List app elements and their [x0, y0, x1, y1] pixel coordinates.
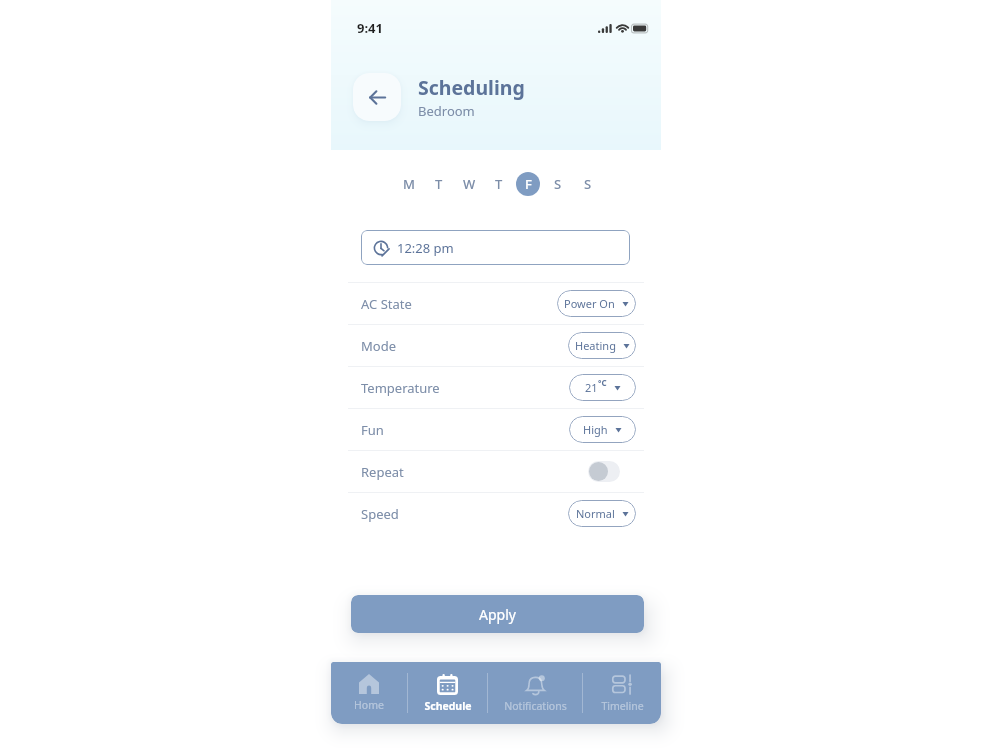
staticText: Speed [361, 505, 399, 523]
button[interactable]: AC State [331, 283, 661, 324]
button[interactable]: M [397, 172, 421, 196]
button[interactable]: Repeat toggle [588, 461, 620, 482]
staticText: Normal [576, 506, 615, 521]
button[interactable]: T [487, 172, 511, 196]
button[interactable]: 21 [569, 374, 636, 401]
staticText: Power On [564, 296, 615, 311]
staticText: S [554, 175, 562, 193]
button[interactable]: 12:28 pm [361, 230, 630, 265]
staticText: Mode [361, 337, 396, 355]
button[interactable]: W [457, 172, 481, 196]
staticText: Bedroom [418, 102, 475, 120]
button[interactable]: Timeline [583, 662, 661, 724]
button[interactable]: Repeat [331, 451, 661, 492]
staticText: Home [354, 698, 384, 712]
staticText: M [403, 175, 415, 193]
button[interactable]: Speed [331, 493, 661, 534]
button[interactable]: High [569, 416, 636, 443]
staticText: T [495, 175, 503, 193]
staticText: 12:28 pm [397, 239, 454, 257]
button[interactable]: Home [331, 662, 407, 724]
button[interactable]: Power On [557, 290, 636, 317]
staticText: T [435, 175, 443, 193]
staticText: High [583, 422, 608, 437]
staticText: Fun [361, 421, 384, 439]
staticText: Apply [479, 605, 516, 624]
staticText: °C [598, 377, 607, 388]
staticText: Temperature [361, 379, 440, 397]
staticText: Notifications [504, 699, 567, 713]
staticText: W [463, 175, 476, 193]
button[interactable]: Mode [331, 325, 661, 366]
staticText: Heating [575, 338, 616, 353]
button[interactable]: Notifications [488, 662, 582, 724]
staticText: Schedule [424, 699, 472, 713]
staticText: Timeline [601, 699, 644, 713]
button[interactable]: F [516, 172, 540, 196]
button[interactable]: Fun [331, 409, 661, 450]
button[interactable]: Temperature [331, 367, 661, 408]
staticText: S [584, 175, 592, 193]
button[interactable]: Heating [568, 332, 636, 359]
button[interactable]: S [546, 172, 570, 196]
staticText: F [525, 175, 532, 193]
button[interactable]: Normal [568, 500, 636, 527]
staticText: 9:41 [357, 19, 383, 37]
button[interactable]: Apply [351, 595, 644, 633]
button[interactable]: Schedule [408, 662, 487, 724]
staticText: AC State [361, 295, 412, 313]
staticText: Repeat [361, 463, 404, 481]
button[interactable]: Back [353, 73, 401, 121]
staticText: Scheduling [418, 74, 525, 101]
button[interactable]: S [576, 172, 600, 196]
staticText: 21 [585, 380, 598, 395]
button[interactable]: T [427, 172, 451, 196]
